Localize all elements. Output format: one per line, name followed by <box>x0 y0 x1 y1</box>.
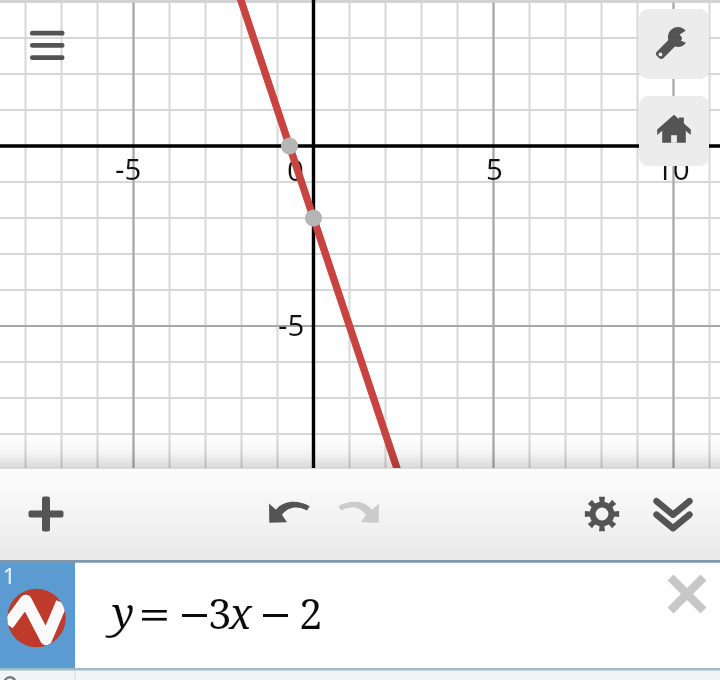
button[interactable]: Settings <box>578 490 626 538</box>
button[interactable]: Delete expression <box>664 571 710 617</box>
button[interactable]: Redo <box>332 486 386 540</box>
button[interactable]: Add expression <box>22 490 70 538</box>
staticText: 2 <box>299 584 323 641</box>
button[interactable]: Undo <box>262 486 316 540</box>
staticText: 1 <box>3 560 16 590</box>
button[interactable]: Graph settings <box>639 9 709 79</box>
button[interactable]: Menu <box>20 22 75 68</box>
button[interactable]: Collapse expressions <box>649 490 697 538</box>
staticText: 10 <box>656 148 690 188</box>
staticText: y <box>112 583 135 640</box>
staticText: 5 <box>486 148 503 188</box>
staticText: -5 <box>115 148 142 188</box>
staticText: -5 <box>278 304 305 344</box>
button[interactable] <box>0 668 720 680</box>
button[interactable]: Home <box>639 96 709 166</box>
button[interactable]: 1 <box>0 560 720 668</box>
staticText: x <box>229 584 252 641</box>
staticText: 3 <box>208 584 232 641</box>
staticText: 0 <box>287 149 304 189</box>
